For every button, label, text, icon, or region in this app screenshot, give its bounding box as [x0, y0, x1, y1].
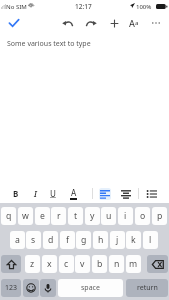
button[interactable]: Align left	[99, 188, 111, 200]
button[interactable]: e	[35, 207, 50, 225]
staticText: b	[97, 258, 103, 270]
button[interactable]: Bulleted list	[146, 188, 158, 200]
staticText: f	[66, 234, 69, 246]
button[interactable]: y	[85, 207, 100, 225]
button[interactable]: g	[76, 231, 91, 249]
button[interactable]: m	[126, 255, 141, 273]
staticText: d	[48, 234, 54, 246]
staticText: i	[124, 210, 127, 222]
staticText: o	[140, 210, 146, 222]
button[interactable]: j	[110, 231, 125, 249]
staticText: q	[6, 210, 12, 222]
button[interactable]: a	[10, 231, 25, 249]
button[interactable]: l	[143, 231, 158, 249]
button[interactable]: t	[68, 207, 83, 225]
button[interactable]: h	[93, 231, 108, 249]
staticText: c	[64, 258, 69, 270]
staticText: a	[15, 234, 20, 246]
staticText: l	[149, 234, 152, 246]
staticText: No SIM	[6, 3, 27, 11]
staticText: A	[129, 17, 135, 29]
button[interactable]: Emoji	[23, 279, 39, 297]
button[interactable]: d	[43, 231, 58, 249]
button[interactable]: U	[46, 183, 60, 203]
staticText: x	[47, 258, 52, 270]
button[interactable]: z	[25, 255, 40, 273]
button[interactable]: Backspace	[147, 255, 168, 273]
button[interactable]: return	[126, 279, 168, 297]
button[interactable]: Redo	[81, 13, 101, 33]
button[interactable]: w	[18, 207, 33, 225]
button[interactable]: c	[59, 255, 74, 273]
button[interactable]: x	[42, 255, 57, 273]
staticText: B	[13, 188, 19, 199]
button[interactable]: i	[118, 207, 133, 225]
button[interactable]: p	[152, 207, 167, 225]
staticText: space	[81, 283, 100, 293]
button[interactable]: r	[51, 207, 66, 225]
staticText: k	[131, 234, 136, 246]
button[interactable]: u	[101, 207, 116, 225]
staticText: u	[106, 210, 112, 222]
button[interactable]: B	[9, 183, 23, 203]
staticText: a	[135, 19, 139, 27]
staticText: I	[34, 188, 37, 199]
button[interactable]: Shift	[1, 255, 21, 273]
button[interactable]: 123	[1, 279, 21, 297]
button[interactable]: space	[58, 279, 123, 297]
staticText: 123	[5, 283, 18, 293]
staticText: w	[22, 210, 29, 222]
staticText: t	[74, 210, 78, 222]
staticText: A	[71, 187, 77, 198]
button[interactable]: o	[135, 207, 150, 225]
button[interactable]: k	[126, 231, 141, 249]
staticText: n	[114, 258, 120, 270]
staticText: e	[40, 210, 45, 222]
button[interactable]: v	[75, 255, 90, 273]
button[interactable]: Dictate	[40, 279, 56, 297]
button[interactable]: Done	[4, 13, 24, 33]
button[interactable]: n	[109, 255, 124, 273]
staticText: g	[81, 234, 87, 246]
staticText: 12:17	[75, 2, 92, 11]
button[interactable]: Insert	[104, 13, 124, 33]
button[interactable]: s	[26, 231, 41, 249]
staticText: Some various text to type	[7, 39, 91, 49]
button[interactable]: More	[146, 13, 166, 33]
button[interactable]: Undo	[57, 13, 77, 33]
staticText: z	[30, 258, 35, 270]
staticText: return	[137, 283, 158, 293]
staticText: j	[116, 234, 119, 246]
button[interactable]: Text colour	[66, 183, 80, 203]
staticText: h	[98, 234, 104, 246]
staticText: U	[50, 188, 56, 199]
button[interactable]: q	[1, 207, 16, 225]
button[interactable]: Align centre	[120, 188, 132, 200]
button[interactable]: f	[60, 231, 75, 249]
staticText: s	[31, 234, 36, 246]
button[interactable]: Text format	[124, 13, 144, 33]
staticText: p	[157, 210, 163, 222]
staticText: 100%	[136, 3, 152, 11]
button[interactable]: b	[92, 255, 107, 273]
button[interactable]: I	[28, 183, 42, 203]
staticText: m	[129, 258, 138, 270]
staticText: r	[57, 210, 61, 222]
staticText: v	[80, 258, 85, 270]
staticText: y	[90, 210, 95, 222]
